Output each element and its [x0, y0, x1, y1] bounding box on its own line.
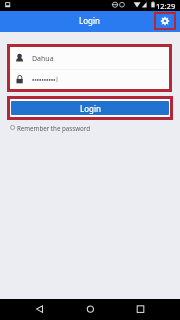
- staticText: Dahua: [32, 54, 54, 64]
- button[interactable]: Remember the password: [10, 122, 91, 133]
- button[interactable]: Login: [11, 101, 169, 115]
- button[interactable]: Back: [29, 299, 50, 320]
- button[interactable]: Home: [80, 299, 101, 320]
- staticText: Login: [79, 15, 100, 26]
- button[interactable]: Recents: [130, 299, 151, 320]
- staticText: Remember the password: [17, 124, 91, 132]
- staticText: 12:29: [156, 1, 176, 11]
- button[interactable]: Settings: [154, 12, 176, 30]
- staticText: Login: [80, 103, 101, 114]
